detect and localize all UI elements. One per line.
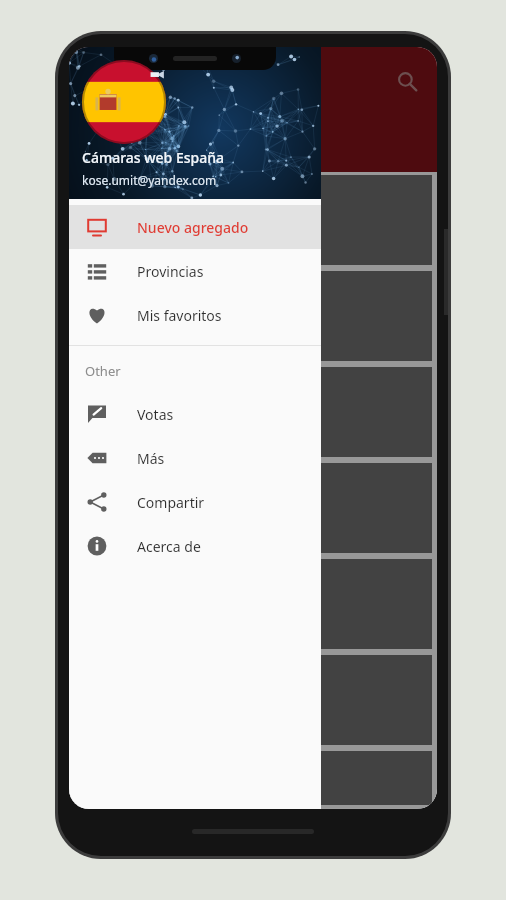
button[interactable] (74, 751, 432, 805)
staticText: Más (137, 449, 165, 468)
staticText: Acerca de (137, 537, 201, 556)
button[interactable]: s (74, 271, 432, 361)
staticText: kose.umit@yandex.com (82, 172, 217, 188)
button[interactable]: Votas (69, 392, 321, 436)
button[interactable]: lla De Mar (74, 463, 432, 553)
staticText: Other (85, 362, 121, 380)
staticText: s (82, 306, 90, 326)
button[interactable]: Acerca de (69, 524, 321, 568)
staticText: Provincias (137, 262, 204, 281)
staticText: Compartir (137, 493, 205, 512)
button[interactable]: govia (74, 655, 432, 745)
staticText: Mis favoritos (137, 306, 222, 325)
staticText: lla De Mar (82, 498, 154, 518)
staticText: r Cam (82, 402, 125, 422)
button[interactable]: Provincias (69, 249, 321, 293)
button[interactable]: Más (69, 436, 321, 480)
staticText: Nuevo agregado (137, 218, 249, 237)
staticText: Beachfront (82, 210, 160, 230)
staticText: PROVINCIAS (83, 141, 164, 157)
button[interactable]: Mis favoritos (69, 293, 321, 337)
staticText: Cámaras web España (82, 148, 224, 167)
button[interactable]: Compartir (69, 480, 321, 524)
button[interactable]: r Cam (74, 367, 432, 457)
staticText: Votas (137, 405, 174, 424)
button[interactable]: Search (389, 63, 425, 99)
button[interactable]: Nuevo agregado (69, 205, 321, 249)
button[interactable]: Beachfront (74, 175, 432, 265)
button[interactable]: via (74, 559, 432, 649)
